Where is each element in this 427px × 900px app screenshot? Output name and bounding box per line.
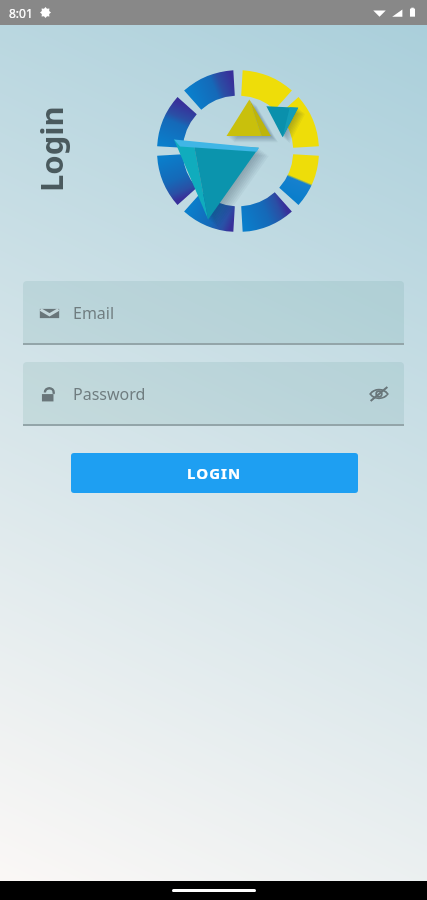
staticText: LOGIN xyxy=(187,463,242,483)
button[interactable]: Password xyxy=(23,362,404,426)
button[interactable]: Show password xyxy=(368,383,390,405)
staticText: Email xyxy=(73,302,115,324)
button[interactable]: Email xyxy=(23,281,404,345)
staticText: Login xyxy=(30,106,72,192)
button[interactable]: LOGIN xyxy=(71,453,358,493)
staticText: 8:01 xyxy=(9,5,33,21)
staticText: Password xyxy=(73,383,146,405)
